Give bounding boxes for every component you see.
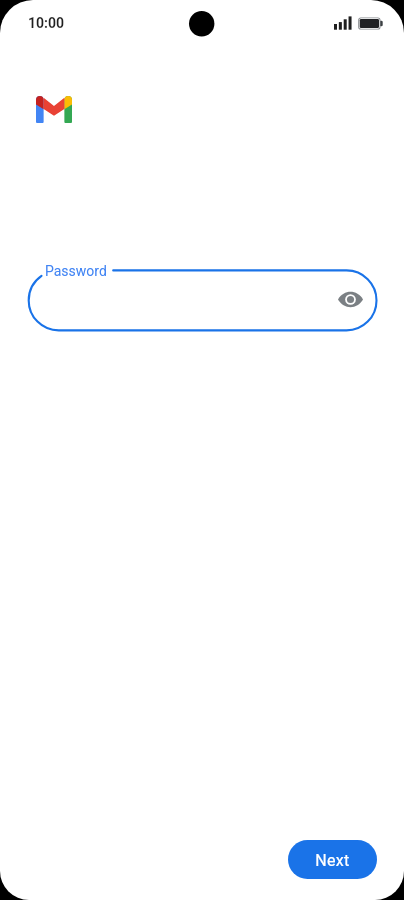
button[interactable]: Show password bbox=[26, 268, 378, 332]
button[interactable]: Show password bbox=[330, 279, 370, 319]
staticText: 10:00 bbox=[28, 15, 65, 31]
staticText: Password bbox=[45, 263, 107, 279]
staticText: Next bbox=[315, 851, 350, 870]
button[interactable]: Next bbox=[288, 840, 377, 879]
